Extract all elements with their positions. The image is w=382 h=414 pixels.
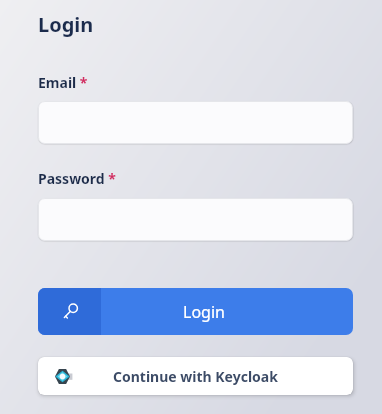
- staticText: Continue with Keycloak: [113, 367, 278, 386]
- button[interactable]: [38, 198, 353, 241]
- staticText: Email *: [38, 73, 88, 92]
- staticText: Login: [183, 301, 225, 323]
- button[interactable]: Login: [38, 288, 353, 335]
- button[interactable]: [38, 101, 353, 144]
- staticText: Password *: [38, 169, 116, 188]
- staticText: Login: [38, 11, 94, 38]
- button[interactable]: Continue with Keycloak: [38, 357, 353, 395]
